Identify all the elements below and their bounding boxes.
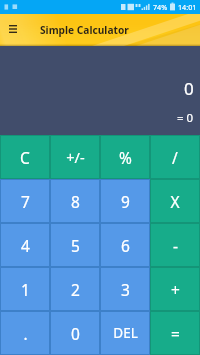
- staticText: +: [171, 279, 180, 300]
- button[interactable]: 8: [50, 179, 100, 223]
- staticText: 6: [121, 235, 130, 256]
- button[interactable]: 0: [50, 311, 100, 355]
- staticText: 3: [121, 279, 130, 300]
- button[interactable]: 2: [50, 267, 100, 311]
- button[interactable]: X: [150, 179, 200, 223]
- staticText: Simple Calculator: [40, 23, 129, 37]
- staticText: 7: [21, 191, 30, 212]
- button[interactable]: 4: [0, 223, 50, 267]
- button[interactable]: =: [150, 311, 200, 355]
- button[interactable]: DEL: [100, 311, 150, 355]
- staticText: 9: [121, 191, 130, 212]
- button[interactable]: %: [100, 135, 150, 179]
- button[interactable]: 7: [0, 179, 50, 223]
- staticText: 74%: [153, 2, 168, 12]
- staticText: .: [23, 323, 28, 344]
- staticText: 4: [21, 235, 30, 256]
- button[interactable]: .: [0, 311, 50, 355]
- button[interactable]: 9: [100, 179, 150, 223]
- staticText: 0: [184, 77, 194, 100]
- button[interactable]: Open navigation menu: [0, 14, 26, 46]
- staticText: 1: [21, 279, 30, 300]
- staticText: 0: [71, 323, 80, 344]
- staticText: 5: [71, 235, 80, 256]
- staticText: -: [173, 235, 178, 256]
- staticText: X: [170, 191, 180, 212]
- staticText: DEL: [113, 324, 138, 342]
- button[interactable]: +/-: [50, 135, 100, 179]
- button[interactable]: 3: [100, 267, 150, 311]
- button[interactable]: 5: [50, 223, 100, 267]
- button[interactable]: 6: [100, 223, 150, 267]
- staticText: = 0: [177, 110, 194, 126]
- button[interactable]: +: [150, 267, 200, 311]
- button[interactable]: -: [150, 223, 200, 267]
- staticText: +/-: [66, 147, 85, 167]
- staticText: 8: [71, 191, 80, 212]
- staticText: 2: [71, 279, 80, 300]
- button[interactable]: 1: [0, 267, 50, 311]
- staticText: C: [20, 147, 30, 168]
- button[interactable]: /: [150, 135, 200, 179]
- staticText: =: [171, 323, 180, 344]
- staticText: 14:01: [178, 2, 197, 12]
- staticText: /: [172, 147, 178, 168]
- staticText: %: [119, 147, 132, 168]
- button[interactable]: C: [0, 135, 50, 179]
